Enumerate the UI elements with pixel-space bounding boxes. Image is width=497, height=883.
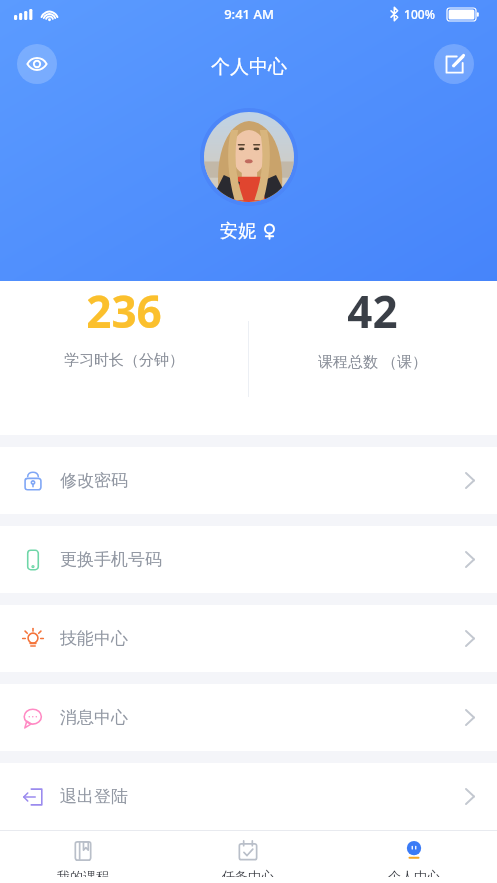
button[interactable]: 技能中心 — [0, 605, 497, 672]
staticText: 消息中心 — [60, 707, 128, 728]
staticText: 技能中心 — [60, 628, 128, 649]
button[interactable]: 消息中心 — [0, 684, 497, 751]
staticText: 个人中心 — [388, 868, 440, 877]
staticText: 更换手机号码 — [60, 549, 162, 570]
staticText: 安妮 — [220, 220, 256, 243]
staticText: 236 — [86, 281, 162, 341]
staticText: 修改密码 — [60, 470, 128, 491]
staticText: 42 — [347, 281, 398, 341]
staticText: 课程总数 （课） — [318, 351, 427, 371]
staticText: 学习时长（分钟） — [64, 351, 184, 370]
button[interactable]: 个人中心 — [331, 831, 497, 883]
button[interactable]: 任务中心 — [165, 831, 331, 883]
button[interactable]: Edit profile — [434, 44, 474, 84]
button[interactable]: Preview — [17, 44, 57, 84]
staticText: 我的课程 — [57, 868, 109, 877]
button[interactable]: 更换手机号码 — [0, 526, 497, 593]
staticText: 任务中心 — [222, 868, 274, 877]
staticText: 100% — [404, 6, 435, 22]
staticText: 个人中心 — [211, 55, 287, 79]
button[interactable]: Avatar — [200, 108, 298, 206]
button[interactable]: 我的课程 — [0, 831, 165, 883]
button[interactable]: 修改密码 — [0, 447, 497, 514]
button[interactable]: 退出登陆 — [0, 763, 497, 830]
staticText: 退出登陆 — [60, 786, 128, 807]
staticText: 9:41 AM — [224, 5, 274, 23]
